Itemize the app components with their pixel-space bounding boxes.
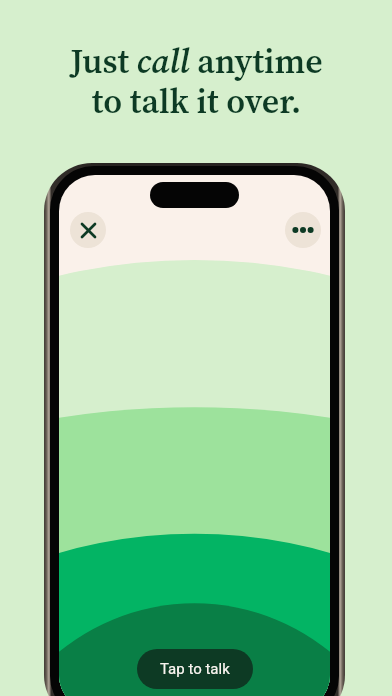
staticText: Just call anytime to talk it over. [70,38,323,124]
button[interactable]: More options [285,212,321,248]
button[interactable]: Tap to talk [137,649,253,689]
staticText: Tap to talk [160,660,230,678]
button[interactable]: Close [70,212,106,248]
